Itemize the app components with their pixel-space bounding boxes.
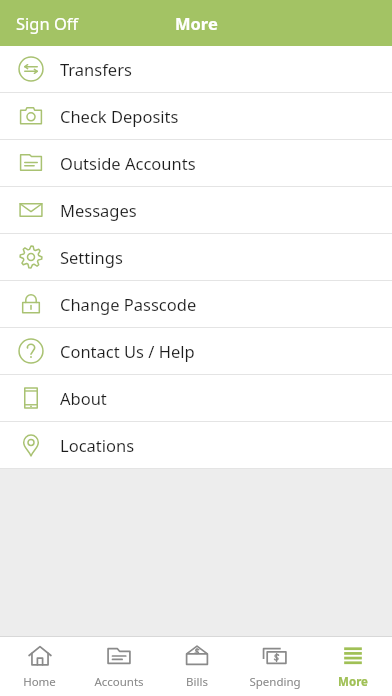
staticText: About xyxy=(60,387,107,409)
button[interactable]: Spending xyxy=(236,637,314,696)
staticText: More xyxy=(175,12,218,34)
button[interactable]: Accounts xyxy=(79,637,158,696)
button[interactable]: Bills xyxy=(158,637,236,696)
button[interactable]: Transfers xyxy=(0,46,392,92)
staticText: Settings xyxy=(60,246,123,268)
staticText: Home xyxy=(23,674,56,690)
staticText: Change Passcode xyxy=(60,293,197,315)
staticText: Bills xyxy=(186,674,208,690)
staticText: Outside Accounts xyxy=(60,152,196,174)
button[interactable]: Outside Accounts xyxy=(0,140,392,186)
button[interactable]: Sign Off xyxy=(6,6,89,40)
button[interactable]: Settings xyxy=(0,234,392,280)
button[interactable]: About xyxy=(0,375,392,421)
button[interactable]: Messages xyxy=(0,187,392,233)
button[interactable]: Change Passcode xyxy=(0,281,392,327)
staticText: Contact Us / Help xyxy=(60,340,195,362)
staticText: Locations xyxy=(60,434,135,456)
staticText: Spending xyxy=(249,674,301,690)
button[interactable]: Contact Us / Help xyxy=(0,328,392,374)
staticText: Check Deposits xyxy=(60,105,179,127)
staticText: Transfers xyxy=(60,58,132,80)
button[interactable]: Check Deposits xyxy=(0,93,392,139)
staticText: Messages xyxy=(60,199,137,221)
staticText: Sign Off xyxy=(16,12,79,34)
staticText: Accounts xyxy=(94,674,144,690)
button[interactable]: Home xyxy=(0,637,79,696)
button[interactable]: More xyxy=(314,637,392,696)
staticText: More xyxy=(338,674,368,690)
button[interactable]: Locations xyxy=(0,422,392,468)
